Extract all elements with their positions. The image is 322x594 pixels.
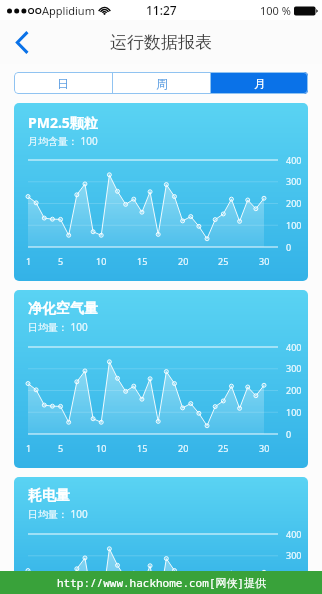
staticText: 100 bbox=[286, 219, 302, 231]
staticText: 200 bbox=[286, 384, 302, 396]
staticText: 15 bbox=[137, 442, 148, 454]
button[interactable]: PM2.5颗粒 bbox=[14, 103, 308, 281]
staticText: 25 bbox=[218, 442, 229, 454]
staticText: 5 bbox=[58, 442, 64, 454]
staticText: 25 bbox=[218, 255, 229, 267]
staticText: 耗电量 bbox=[28, 487, 70, 505]
button[interactable]: 净化空气量 bbox=[14, 290, 308, 468]
button[interactable]: 耗电量 bbox=[14, 477, 308, 594]
staticText: 周 bbox=[156, 76, 168, 91]
staticText: 月均含量： 100 bbox=[28, 134, 98, 148]
staticText: http://www.hackhome.com[网侠]提供 bbox=[57, 575, 266, 590]
staticText: 运行数据报表 bbox=[110, 32, 212, 53]
button[interactable]: 返回 bbox=[0, 20, 44, 64]
staticText: 300 bbox=[286, 175, 302, 187]
staticText: 300 bbox=[286, 362, 302, 374]
staticText: 100 % bbox=[260, 3, 291, 18]
button[interactable]: 周 bbox=[113, 72, 210, 94]
staticText: 日 bbox=[57, 76, 69, 91]
staticText: 11:27 bbox=[146, 2, 177, 18]
staticText: Applidium bbox=[42, 3, 95, 18]
staticText: PM2.5颗粒 bbox=[28, 113, 98, 132]
staticText: 日均量： 100 bbox=[28, 507, 88, 521]
staticText: 月 bbox=[254, 76, 266, 91]
staticText: 30 bbox=[259, 255, 270, 267]
staticText: 100 bbox=[286, 406, 302, 418]
staticText: 30 bbox=[259, 442, 270, 454]
staticText: 5 bbox=[58, 255, 64, 267]
staticText: 0 bbox=[286, 428, 292, 440]
staticText: 400 bbox=[286, 528, 302, 540]
staticText: 20 bbox=[178, 255, 189, 267]
staticText: 200 bbox=[286, 197, 302, 209]
staticText: 日均量： 100 bbox=[28, 320, 88, 334]
button[interactable]: 月 bbox=[211, 72, 308, 94]
staticText: 1 bbox=[26, 442, 32, 454]
staticText: 15 bbox=[137, 255, 148, 267]
button[interactable]: 日 bbox=[14, 72, 112, 94]
staticText: 10 bbox=[96, 442, 107, 454]
staticText: 400 bbox=[286, 341, 302, 353]
staticText: 净化空气量 bbox=[28, 300, 98, 318]
staticText: 400 bbox=[286, 154, 302, 166]
staticText: 300 bbox=[286, 549, 302, 561]
staticText: 0 bbox=[286, 241, 292, 253]
staticText: 20 bbox=[178, 442, 189, 454]
staticText: 10 bbox=[96, 255, 107, 267]
staticText: 1 bbox=[26, 255, 32, 267]
